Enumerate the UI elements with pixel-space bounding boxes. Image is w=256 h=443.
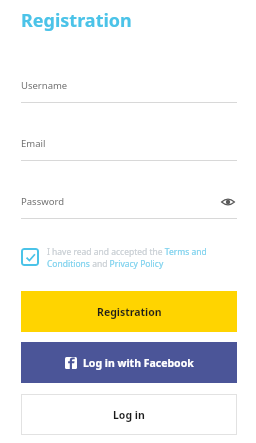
button[interactable]: Password: [21, 190, 237, 219]
staticText: Log in: [113, 408, 145, 422]
staticText: Username: [21, 79, 68, 92]
staticText: Registration: [21, 8, 132, 33]
staticText: I have read and accepted the Terms and C…: [47, 246, 237, 270]
button[interactable]: Accept terms: [21, 246, 237, 270]
button[interactable]: Email: [21, 132, 237, 161]
button[interactable]: Show password: [219, 193, 237, 211]
staticText: Registration: [97, 305, 162, 319]
button[interactable]: Log in with Facebook: [21, 342, 237, 383]
button[interactable]: Registration: [21, 291, 237, 332]
staticText: Password: [21, 195, 64, 208]
staticText: Log in with Facebook: [83, 356, 194, 370]
other: Accept terms: [21, 248, 39, 266]
button[interactable]: Log in: [21, 394, 237, 435]
staticText: Email: [21, 137, 46, 150]
button[interactable]: Username: [21, 74, 237, 103]
